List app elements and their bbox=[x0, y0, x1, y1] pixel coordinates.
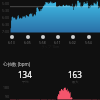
staticText: 心拍数 (bpm) bbox=[3, 61, 31, 67]
button[interactable]: 134 bbox=[0, 69, 50, 84]
staticText: 163 bbox=[68, 69, 82, 80]
button[interactable]: 6:11 bbox=[54, 35, 61, 45]
staticText: 6:13 bbox=[8, 40, 15, 45]
button[interactable]: 6:02 bbox=[69, 35, 76, 45]
staticText: 5:54 bbox=[85, 40, 92, 45]
button[interactable]: 6:05 bbox=[24, 35, 31, 45]
staticText: 6:11 bbox=[54, 40, 61, 45]
staticText: 6:30 bbox=[0, 22, 9, 27]
button[interactable]: 5:58 bbox=[39, 35, 46, 45]
staticText: 6:00 bbox=[0, 15, 9, 20]
staticText: 最大 bbox=[72, 80, 79, 84]
staticText: 6:05 bbox=[24, 40, 31, 45]
staticText: 平均 bbox=[22, 80, 29, 84]
staticText: 180 bbox=[0, 85, 9, 90]
staticText: 6:02 bbox=[69, 40, 76, 45]
staticText: 5:58 bbox=[39, 40, 46, 45]
button[interactable]: 163 bbox=[50, 69, 100, 84]
staticText: 7:00 bbox=[0, 29, 9, 34]
staticText: 5:30 bbox=[0, 8, 9, 13]
staticText: 134 bbox=[18, 69, 32, 80]
staticText: 5:00 bbox=[0, 1, 9, 6]
staticText: 90 bbox=[0, 94, 9, 99]
button[interactable]: 6:13 bbox=[8, 35, 15, 45]
button[interactable]: 5:54 bbox=[85, 35, 92, 45]
